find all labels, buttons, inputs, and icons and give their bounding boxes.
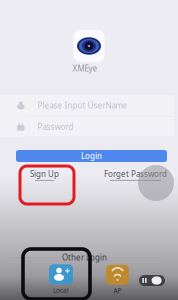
staticText: Sign Up <box>30 168 59 179</box>
staticText: Please Input UserName <box>38 100 128 111</box>
button[interactable]: Forget Password <box>104 168 167 180</box>
staticText: Login <box>81 151 102 161</box>
staticText: Password <box>37 121 73 132</box>
button[interactable]: Sign Up <box>30 168 59 180</box>
staticText: XMEye <box>72 63 97 74</box>
button[interactable]: Local <box>49 264 73 295</box>
staticText: Local <box>53 286 69 295</box>
staticText: Other Login <box>62 252 107 263</box>
staticText: AP <box>113 286 121 295</box>
button[interactable]: AP <box>106 265 129 295</box>
staticText: Forget Password <box>104 168 167 179</box>
button[interactable]: Login <box>16 150 167 162</box>
